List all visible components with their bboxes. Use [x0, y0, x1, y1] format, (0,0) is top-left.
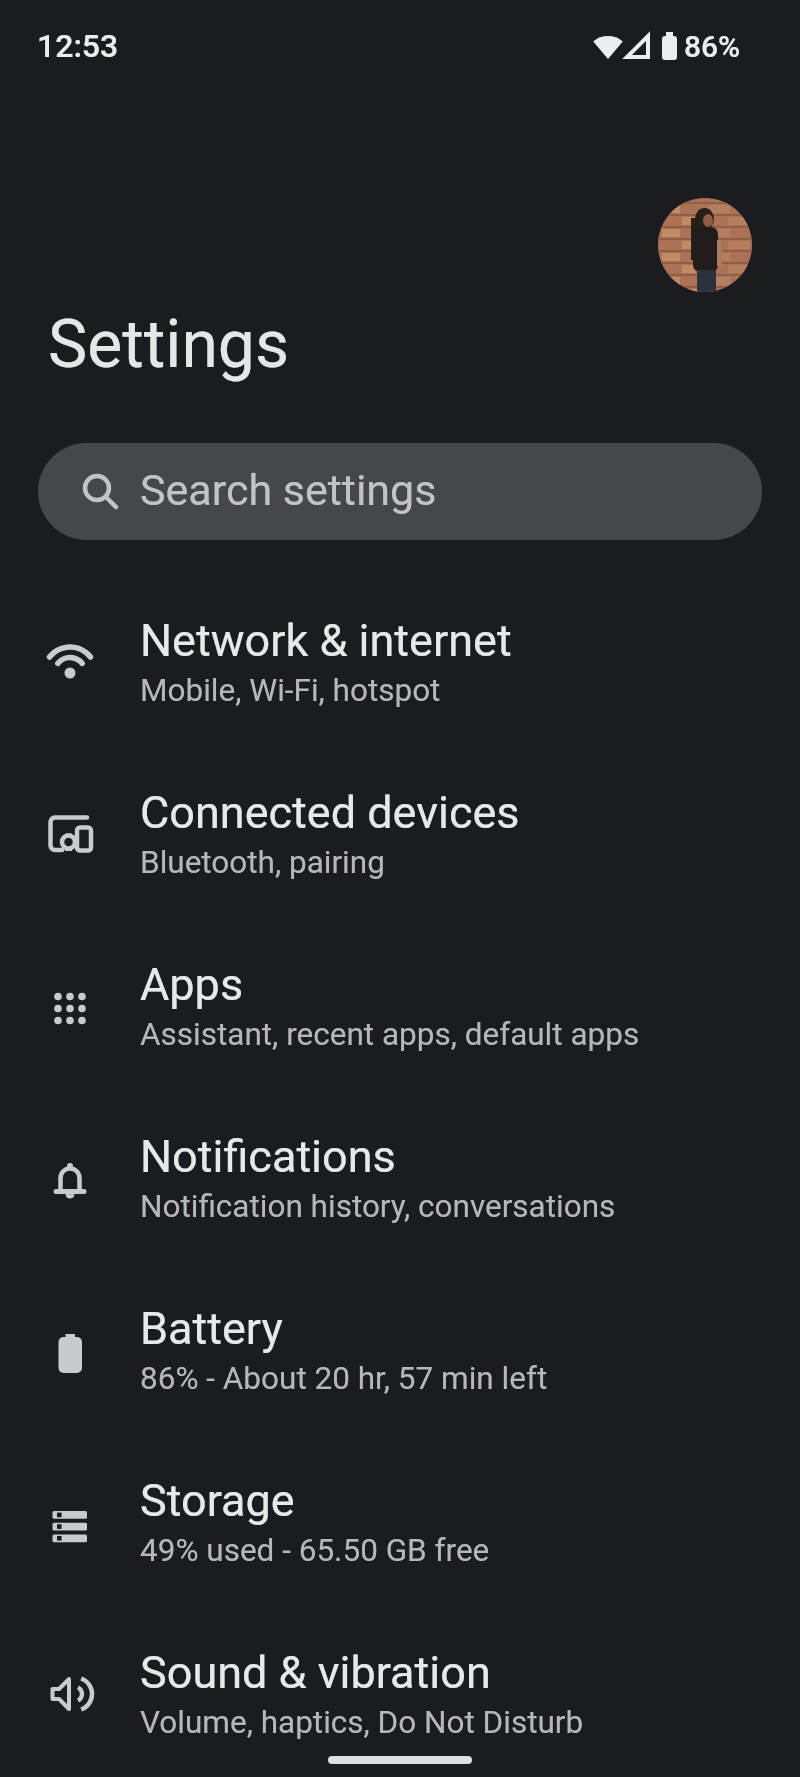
button[interactable]	[658, 198, 752, 292]
button[interactable]: Apps	[0, 919, 800, 1091]
staticText: Search settings	[140, 465, 437, 515]
button[interactable]: Search settings	[38, 443, 762, 540]
staticText: Storage	[140, 1474, 295, 1527]
staticText: Volume, haptics, Do Not Disturb	[140, 1704, 584, 1741]
button[interactable]: Battery	[0, 1263, 800, 1435]
button[interactable]	[328, 1756, 472, 1764]
button[interactable]: Sound & vibration	[0, 1607, 800, 1777]
button[interactable]: Network & internet	[0, 575, 800, 747]
staticText: Notification history, conversations	[140, 1188, 616, 1225]
staticText: 49% used - 65.50 GB free	[140, 1532, 490, 1569]
button[interactable]: Storage	[0, 1435, 800, 1607]
staticText: 12:53	[37, 27, 119, 65]
staticText: Network & internet	[140, 614, 512, 667]
staticText: Apps	[140, 958, 244, 1011]
staticText: Notifications	[140, 1130, 396, 1183]
staticText: Bluetooth, pairing	[140, 844, 385, 881]
staticText: Battery	[140, 1302, 283, 1355]
button[interactable]: Connected devices	[0, 747, 800, 919]
staticText: 86% - About 20 hr, 57 min left	[140, 1360, 548, 1397]
button[interactable]: Notifications	[0, 1091, 800, 1263]
staticText: Assistant, recent apps, default apps	[140, 1016, 640, 1053]
staticText: 86%	[684, 29, 741, 64]
staticText: Connected devices	[140, 786, 520, 839]
staticText: Mobile, Wi-Fi, hotspot	[140, 672, 441, 709]
staticText: Settings	[48, 306, 289, 383]
staticText: Sound & vibration	[140, 1646, 491, 1699]
